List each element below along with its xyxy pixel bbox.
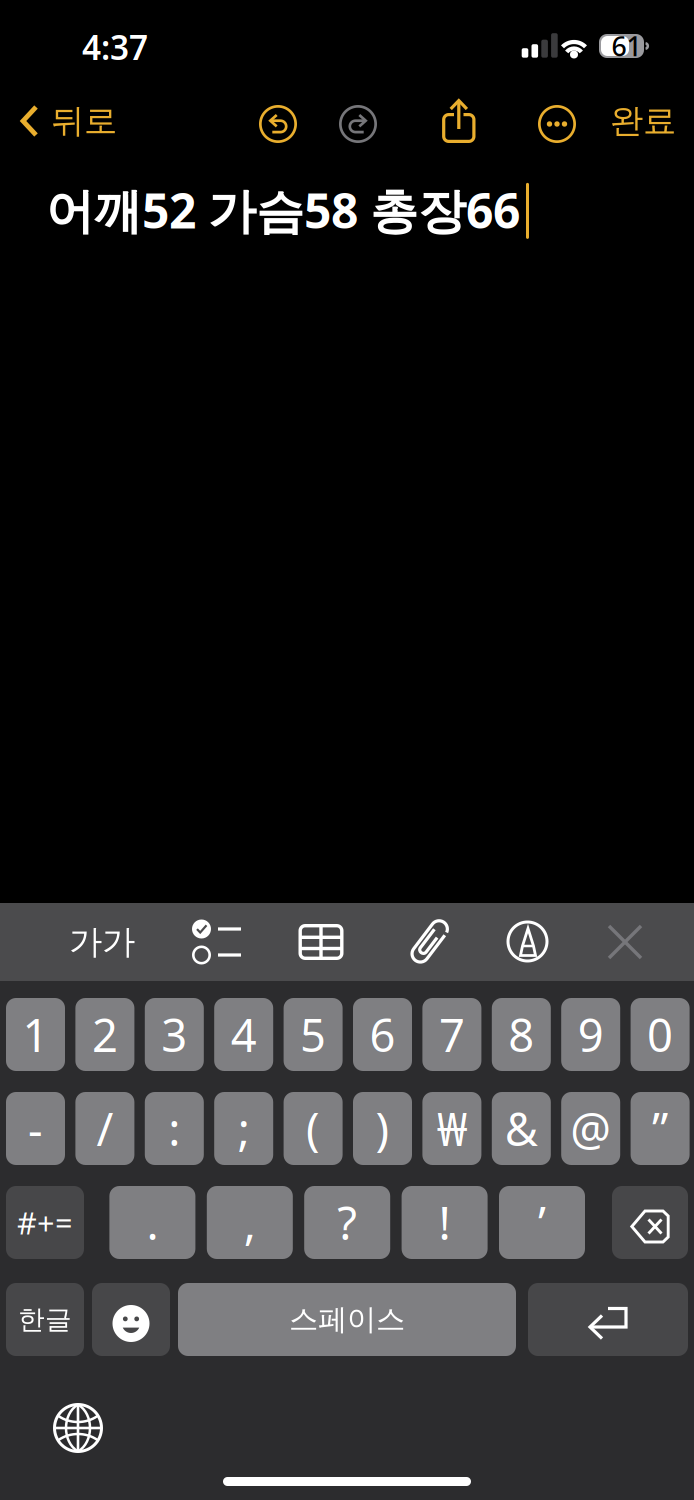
button[interactable]: 공유 <box>430 92 488 150</box>
button[interactable]: : <box>145 1092 204 1165</box>
button[interactable]: 0 <box>631 998 690 1071</box>
staticText: 0 <box>647 1004 673 1065</box>
button[interactable]: 체크리스트 <box>184 903 250 981</box>
button[interactable]: ₩ <box>422 1092 481 1165</box>
button[interactable]: 다음 키보드 <box>45 1395 111 1461</box>
button[interactable]: ; <box>214 1092 273 1165</box>
button[interactable]: & <box>492 1092 551 1165</box>
staticText: 스페이스 <box>289 1301 405 1337</box>
staticText: . <box>146 1192 158 1253</box>
staticText: & <box>505 1098 538 1159</box>
staticText: ! <box>439 1192 451 1253</box>
button[interactable]: 더 보기 <box>528 95 586 153</box>
staticText: ” <box>652 1098 668 1159</box>
button[interactable]: ! <box>402 1186 488 1259</box>
staticText: ’ <box>538 1192 546 1253</box>
button[interactable]: #+= <box>6 1186 84 1259</box>
button[interactable]: 3 <box>145 998 204 1071</box>
button[interactable]: 마크업 <box>495 903 561 981</box>
button[interactable]: ? <box>304 1186 390 1259</box>
staticText: 4:37 <box>82 25 148 69</box>
staticText: 가가 <box>69 921 135 962</box>
staticText: 61 <box>611 28 641 64</box>
staticText: / <box>96 1098 113 1159</box>
staticText: 5 <box>300 1004 326 1065</box>
staticText: 7 <box>439 1004 465 1065</box>
staticText: ; <box>238 1098 250 1159</box>
button[interactable]: 9 <box>561 998 620 1071</box>
button[interactable]: / <box>75 1092 134 1165</box>
staticText: , <box>244 1192 256 1253</box>
staticText: 1 <box>22 1004 48 1065</box>
staticText: - <box>28 1098 43 1159</box>
button[interactable]: ) <box>353 1092 412 1165</box>
staticText: @ <box>570 1098 611 1159</box>
staticText: 뒤로 <box>51 100 117 141</box>
button[interactable]: , <box>207 1186 293 1259</box>
button[interactable]: 완료 <box>594 91 692 151</box>
button[interactable]: 닫기 <box>592 903 658 981</box>
staticText: ₩ <box>437 1098 467 1159</box>
staticText: ) <box>375 1098 389 1159</box>
staticText: 2 <box>92 1004 118 1065</box>
button[interactable]: 다시 실행 <box>329 95 387 153</box>
button[interactable]: 줄바꿈 <box>528 1283 688 1356</box>
button[interactable]: 첨부 파일 <box>396 903 462 981</box>
staticText: 9 <box>578 1004 604 1065</box>
button[interactable]: 4 <box>214 998 273 1071</box>
staticText: 3 <box>161 1004 187 1065</box>
button[interactable]: - <box>6 1092 65 1165</box>
button[interactable]: 삭제 <box>612 1186 688 1259</box>
button[interactable]: 7 <box>422 998 481 1071</box>
button[interactable]: 2 <box>75 998 134 1071</box>
button[interactable]: . <box>109 1186 195 1259</box>
button[interactable]: 가가 <box>54 903 150 981</box>
staticText: ( <box>306 1098 320 1159</box>
button[interactable]: 1 <box>6 998 65 1071</box>
button[interactable]: 5 <box>284 998 343 1071</box>
button[interactable]: 실행 취소 <box>249 95 307 153</box>
button[interactable]: ’ <box>499 1186 585 1259</box>
button[interactable]: ” <box>631 1092 690 1165</box>
button[interactable]: 이모티콘 <box>92 1283 170 1356</box>
staticText: #+= <box>17 1202 73 1243</box>
staticText: : <box>168 1098 180 1159</box>
button[interactable]: 한글 <box>6 1283 84 1356</box>
staticText: 한글 <box>18 1303 72 1336</box>
button[interactable]: 8 <box>492 998 551 1071</box>
staticText: 8 <box>508 1004 534 1065</box>
button[interactable]: 표 <box>288 903 354 981</box>
button[interactable]: ( <box>284 1092 343 1165</box>
button[interactable]: @ <box>561 1092 620 1165</box>
staticText: 4 <box>231 1004 257 1065</box>
staticText: ? <box>337 1192 357 1253</box>
staticText: 6 <box>369 1004 395 1065</box>
staticText: 완료 <box>610 100 676 141</box>
button[interactable]: 스페이스 <box>178 1283 516 1356</box>
staticText: 어깨52 가슴58 총장66 <box>46 178 520 242</box>
button[interactable]: 뒤로 <box>5 91 131 151</box>
button[interactable]: 6 <box>353 998 412 1071</box>
